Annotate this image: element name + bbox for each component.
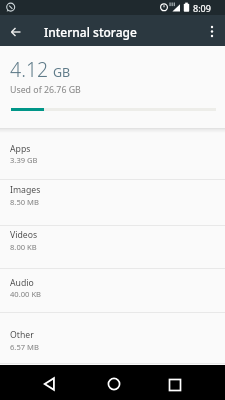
staticText: 8.50 MB xyxy=(10,197,39,207)
button[interactable] xyxy=(197,15,225,46)
button[interactable]: Apps xyxy=(0,137,225,179)
staticText: 6.57 MB xyxy=(10,342,39,352)
staticText: GB xyxy=(53,64,71,81)
staticText: 8:09 xyxy=(193,2,211,14)
button[interactable]: Other xyxy=(0,323,225,363)
staticText: Other xyxy=(10,329,34,341)
staticText: Apps xyxy=(10,143,31,155)
staticText: 40.00 KB xyxy=(10,289,42,299)
staticText: Internal storage xyxy=(44,24,137,40)
button[interactable]: Images xyxy=(0,178,225,225)
staticText: Images xyxy=(10,184,41,196)
staticText: 8.00 KB xyxy=(10,242,37,252)
button[interactable] xyxy=(18,365,81,400)
button[interactable] xyxy=(0,15,31,46)
button[interactable] xyxy=(81,365,144,400)
button[interactable]: Audio xyxy=(0,271,225,312)
staticText: Audio xyxy=(10,277,34,289)
staticText: Videos xyxy=(10,229,38,241)
staticText: Used of 26.76 GB xyxy=(10,84,81,96)
button[interactable] xyxy=(144,365,207,400)
staticText: 3.39 GB xyxy=(10,155,38,165)
button[interactable]: Videos xyxy=(0,223,225,268)
staticText: 4.12 xyxy=(10,56,49,83)
